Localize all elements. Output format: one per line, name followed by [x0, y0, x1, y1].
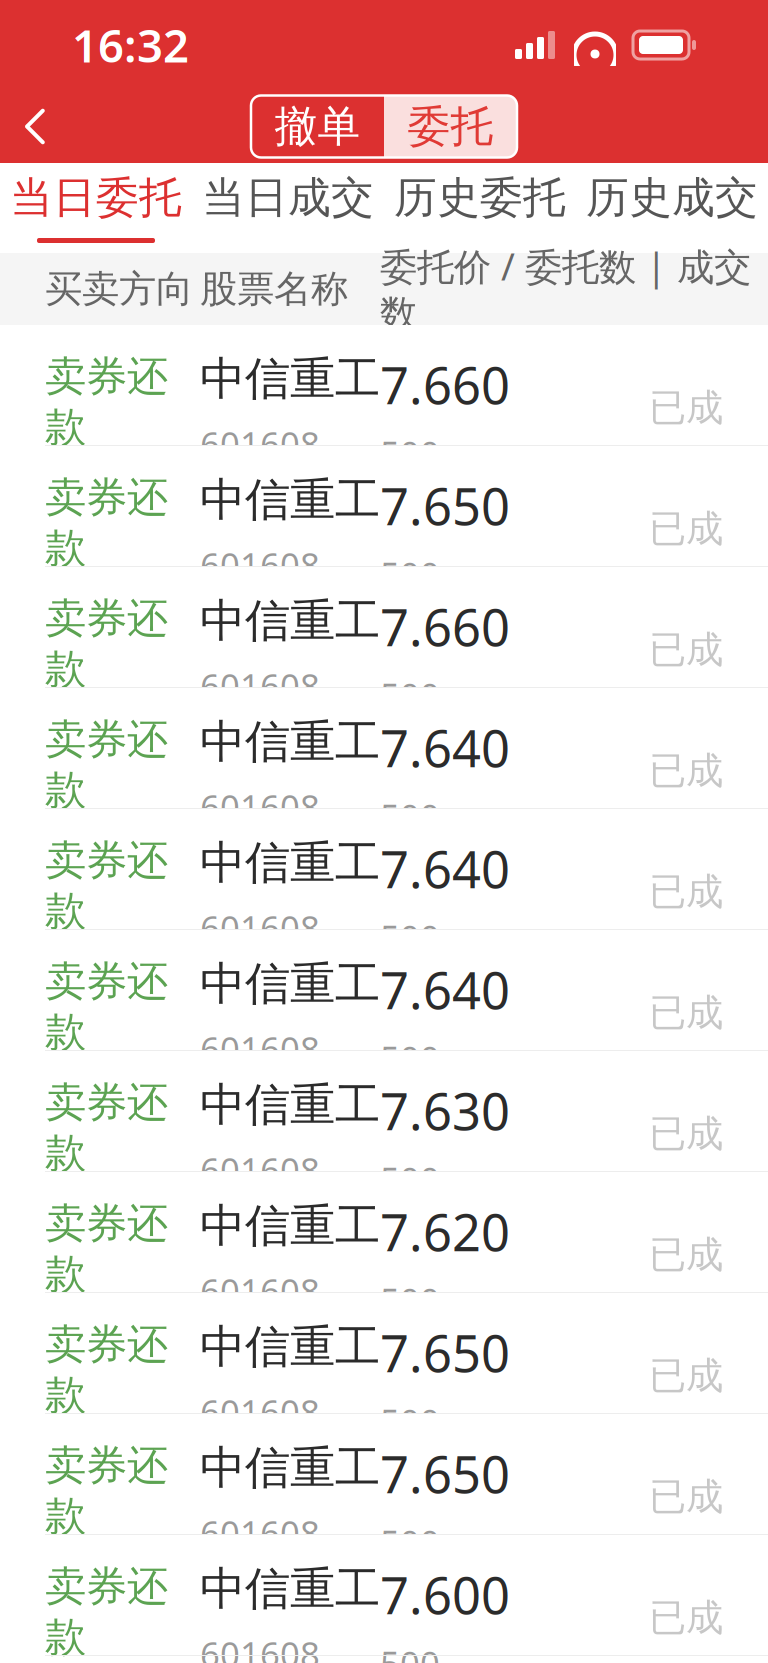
staticText: 601608 [200, 542, 320, 588]
staticText: 7.620 [380, 1198, 510, 1265]
staticText: 5000 [477, 695, 557, 741]
staticText: 5000 [477, 1300, 557, 1346]
staticText: 卖券还款 [45, 1561, 168, 1662]
staticText: 601608 [200, 1147, 320, 1193]
button[interactable]: 卖券还款 [0, 1293, 768, 1413]
staticText: 已成 [649, 627, 723, 673]
staticText: 已成 [649, 1353, 723, 1399]
staticText: 卖券还款 [45, 472, 168, 573]
staticText: 5000 [380, 672, 440, 764]
staticText: 601608 [200, 1510, 320, 1556]
staticText: 601608 [200, 784, 320, 830]
staticText: 中信重工 [200, 472, 380, 528]
button[interactable]: 当日委托 [0, 163, 192, 253]
staticText: 5000 [477, 816, 557, 862]
staticText: 13:56:40 [45, 1190, 183, 1236]
staticText: 601608 [200, 1268, 320, 1314]
staticText: 601608 [200, 421, 320, 467]
staticText: 5000 [477, 937, 557, 983]
staticText: 股票名称 [200, 266, 348, 312]
staticText: 14:31:13 [45, 585, 183, 631]
staticText: 7.630 [380, 1077, 510, 1144]
staticText: 601608 [200, 663, 320, 709]
staticText: 14:18:34 [45, 706, 183, 752]
staticText: 中信重工 [200, 593, 380, 649]
button[interactable]: 卖券还款 [0, 446, 768, 566]
staticText: 已成 [649, 506, 723, 552]
staticText: 历史委托 [394, 172, 566, 224]
staticText: 5000 [380, 1398, 440, 1490]
staticText: 已成 [649, 748, 723, 794]
staticText: 卖券还款 [45, 835, 168, 936]
staticText: 5000 [380, 551, 440, 643]
staticText: 已成 [649, 1232, 723, 1278]
staticText: 已成 [649, 990, 723, 1036]
staticText: 5000 [380, 1640, 440, 1663]
staticText: 13:48:40 [45, 1432, 183, 1478]
staticText: 中信重工 [200, 835, 380, 891]
staticText: 中信重工 [200, 1319, 380, 1375]
staticText: 601608 [200, 1026, 320, 1072]
button[interactable]: 历史成交 [576, 163, 768, 253]
staticText: 中信重工 [200, 1198, 380, 1254]
staticText: | [440, 1542, 477, 1588]
staticText: 14:03:38 [45, 1069, 183, 1115]
staticText: 601608 [200, 1631, 320, 1663]
staticText: 5000 [380, 1519, 440, 1611]
staticText: | [440, 1058, 477, 1104]
staticText: 卖券还款 [45, 1198, 168, 1299]
staticText: 买卖方向 [45, 266, 193, 312]
button[interactable]: 卖券还款 [0, 325, 768, 445]
staticText: 7.650 [380, 1440, 510, 1507]
staticText: 5000 [380, 1156, 440, 1248]
staticText: 601608 [200, 1389, 320, 1435]
staticText: 已成 [649, 1111, 723, 1157]
staticText: 7.640 [380, 714, 510, 781]
button[interactable]: 卖券还款 [0, 1535, 768, 1655]
staticText: 卖券还款 [45, 1077, 168, 1178]
staticText: | [440, 695, 477, 741]
staticText: 已成 [649, 385, 723, 431]
staticText: | [440, 453, 477, 499]
staticText: 中信重工 [200, 1077, 380, 1133]
staticText: 7.640 [380, 835, 510, 902]
staticText: 卖券还款 [45, 1440, 168, 1541]
staticText: 5000 [380, 430, 440, 522]
button[interactable]: 历史委托 [384, 163, 576, 253]
button[interactable]: 撤单 [251, 95, 384, 157]
staticText: 卖券还款 [45, 714, 168, 815]
staticText: 撤单 [274, 100, 360, 153]
staticText: | [440, 816, 477, 862]
staticText: 5000 [477, 1421, 557, 1467]
button[interactable]: 卖券还款 [0, 1414, 768, 1534]
staticText: 中信重工 [200, 1440, 380, 1496]
staticText: 7.650 [380, 472, 510, 539]
button[interactable]: 当日成交 [192, 163, 384, 253]
staticText: 13:52:25 [45, 1311, 183, 1357]
button[interactable]: 卖券还款 [0, 567, 768, 687]
staticText: 5000 [380, 914, 440, 1006]
staticText: 历史成交 [586, 172, 758, 224]
staticText: 5000 [380, 1035, 440, 1127]
staticText: 中信重工 [200, 351, 380, 407]
staticText: 已成 [649, 1474, 723, 1520]
button[interactable]: 卖券还款 [0, 809, 768, 929]
button[interactable]: 卖券还款 [0, 688, 768, 808]
staticText: 16:32 [72, 15, 189, 75]
staticText: 601608 [200, 905, 320, 951]
staticText: 卖券还款 [45, 1319, 168, 1420]
staticText: 5000 [477, 453, 557, 499]
staticText: | [440, 1421, 477, 1467]
button[interactable]: 返回 [0, 90, 70, 163]
staticText: 5000 [380, 793, 440, 885]
staticText: 当日成交 [202, 172, 374, 224]
staticText: 14:06:46 [45, 948, 183, 994]
staticText: 14:18:00 [45, 827, 183, 873]
staticText: 卖券还款 [45, 593, 168, 694]
staticText: | [440, 1300, 477, 1346]
button[interactable]: 卖券还款 [0, 1051, 768, 1171]
staticText: 当日委托 [10, 172, 182, 224]
button[interactable]: 委托 [384, 95, 517, 157]
button[interactable]: 卖券还款 [0, 930, 768, 1050]
button[interactable]: 卖券还款 [0, 1172, 768, 1292]
